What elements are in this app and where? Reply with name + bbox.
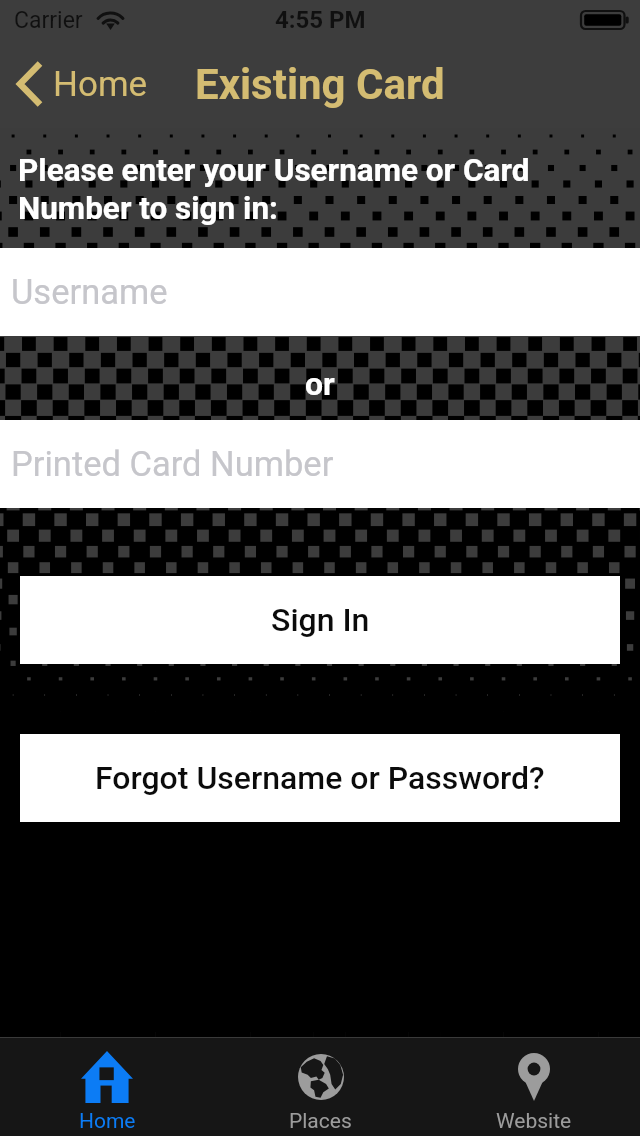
staticText: Places (289, 1109, 352, 1134)
button[interactable]: Username (0, 248, 640, 336)
staticText: Printed Card Number (11, 444, 334, 484)
staticText: or (305, 365, 335, 403)
button[interactable]: Places (214, 1038, 427, 1136)
staticText: Carrier (14, 7, 83, 34)
staticText: Sign In (271, 601, 370, 639)
button[interactable]: Forgot Username or Password? (20, 734, 620, 822)
staticText: Existing Card (195, 60, 445, 109)
staticText: Website (496, 1109, 572, 1134)
button[interactable]: Sign In (20, 576, 620, 664)
staticText: Home (53, 64, 148, 105)
button[interactable]: Printed Card Number (0, 420, 640, 508)
staticText: Home (79, 1109, 136, 1134)
staticText: 4:55 PM (275, 6, 366, 34)
other: Places (298, 1054, 344, 1100)
staticText: Please enter your Username or Card Numbe… (18, 152, 530, 227)
staticText: Username (11, 272, 168, 312)
staticText: Forgot Username or Password? (95, 759, 545, 797)
other: Website (518, 1053, 550, 1101)
button[interactable]: Home (0, 1038, 214, 1136)
button[interactable]: Website (427, 1038, 640, 1136)
other: Home (81, 1051, 133, 1103)
button[interactable]: Home (0, 40, 158, 128)
